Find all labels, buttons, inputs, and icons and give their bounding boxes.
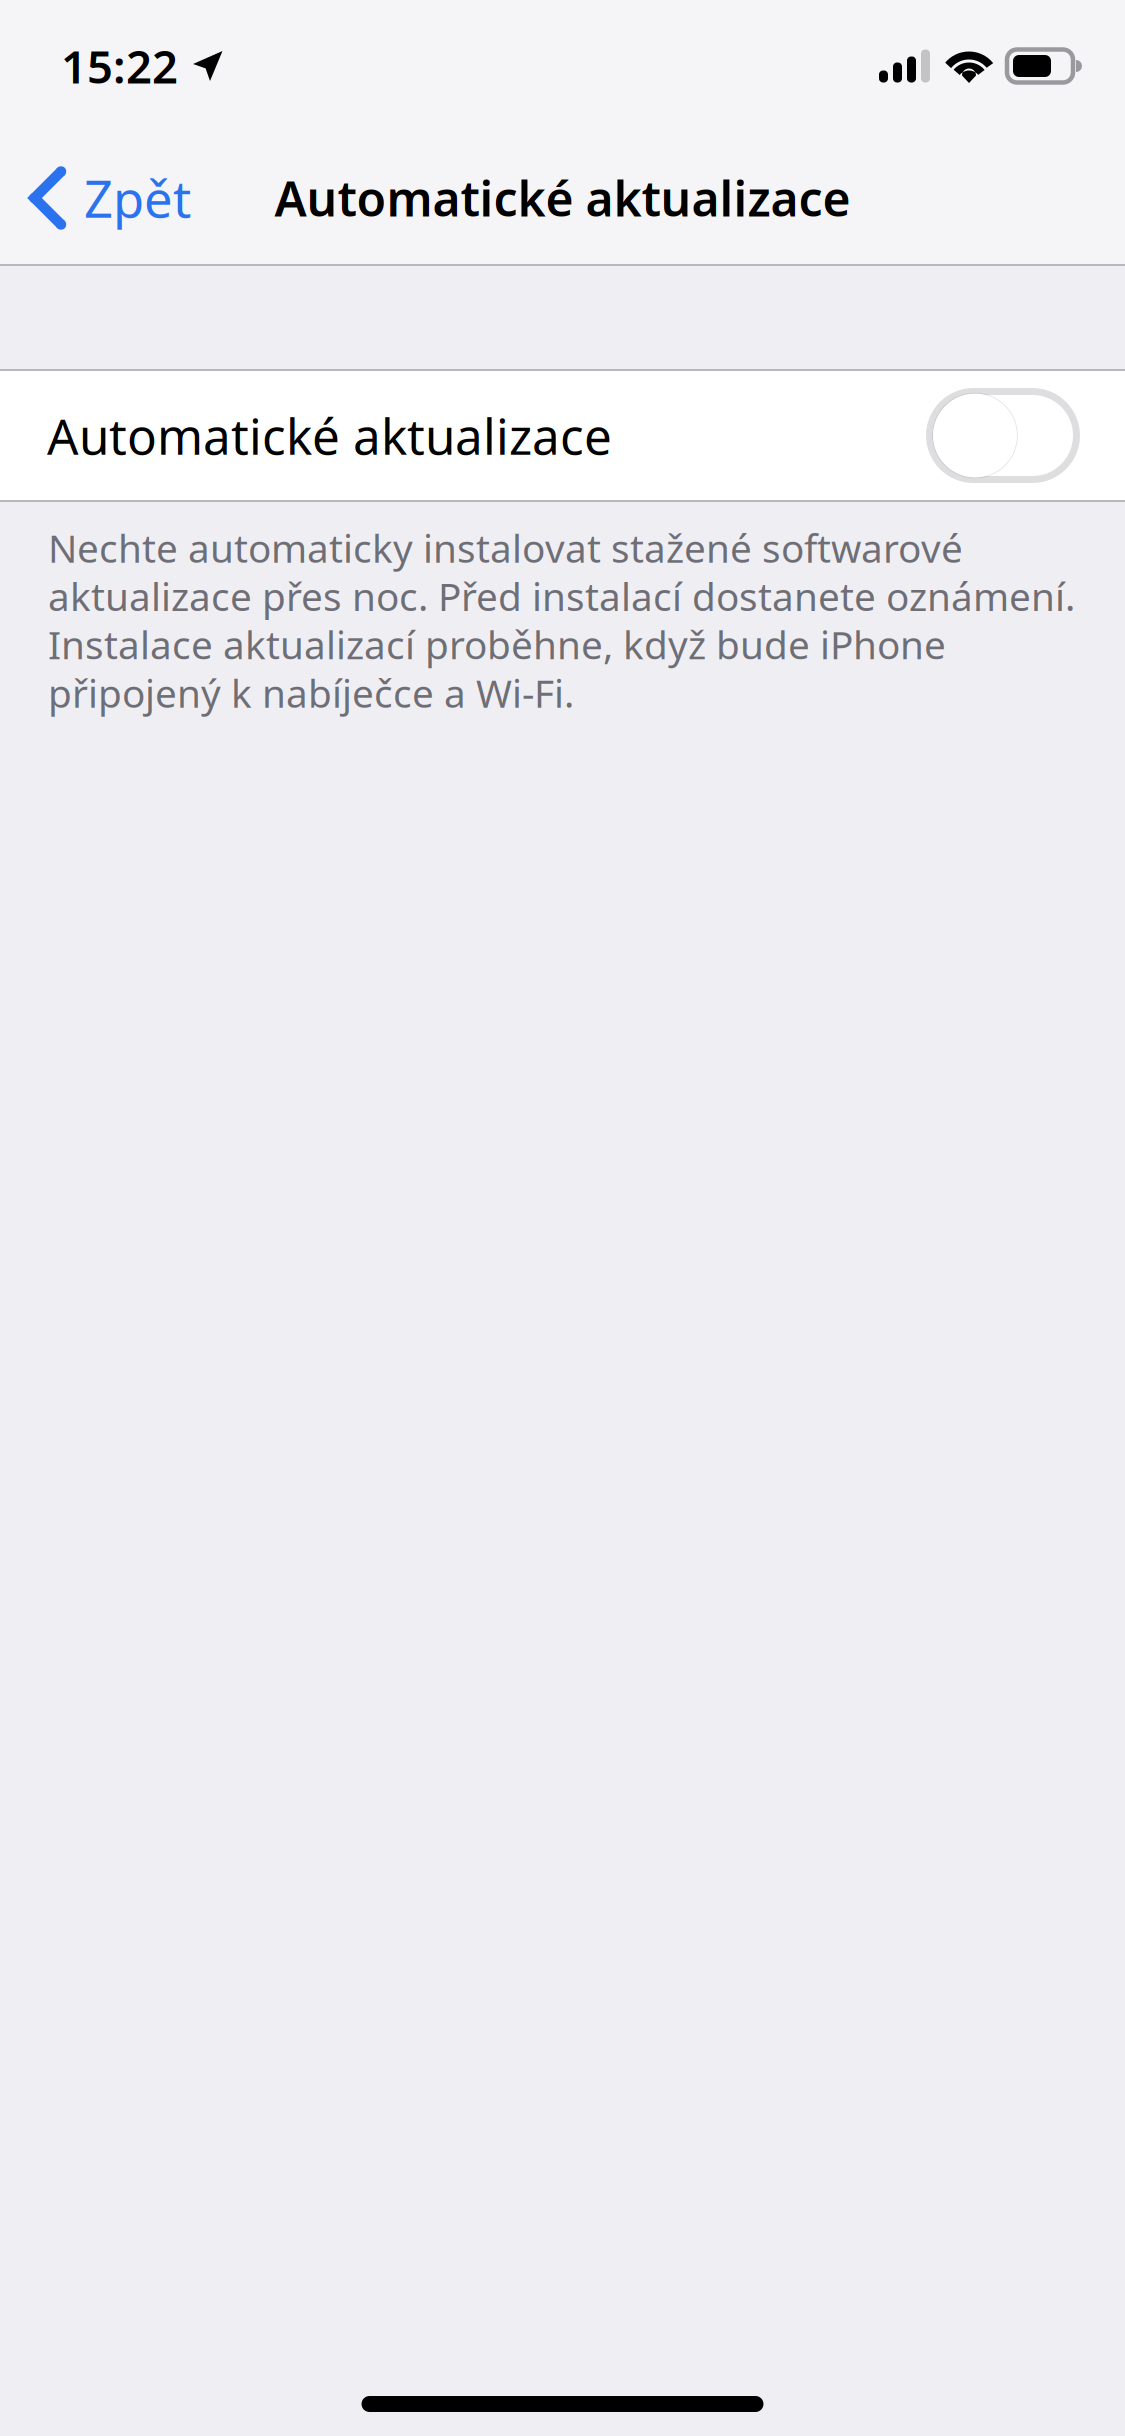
staticText: Zpět	[84, 164, 191, 232]
staticText: 15:22	[61, 36, 178, 96]
button[interactable]: Zpět	[0, 132, 211, 264]
staticText: Nechte automaticky instalovat stažené so…	[48, 522, 1075, 718]
button[interactable]: Automatické aktualizace	[0, 371, 1125, 500]
staticText: Automatické aktualizace	[274, 166, 850, 230]
staticText: Automatické aktualizace	[47, 403, 612, 468]
